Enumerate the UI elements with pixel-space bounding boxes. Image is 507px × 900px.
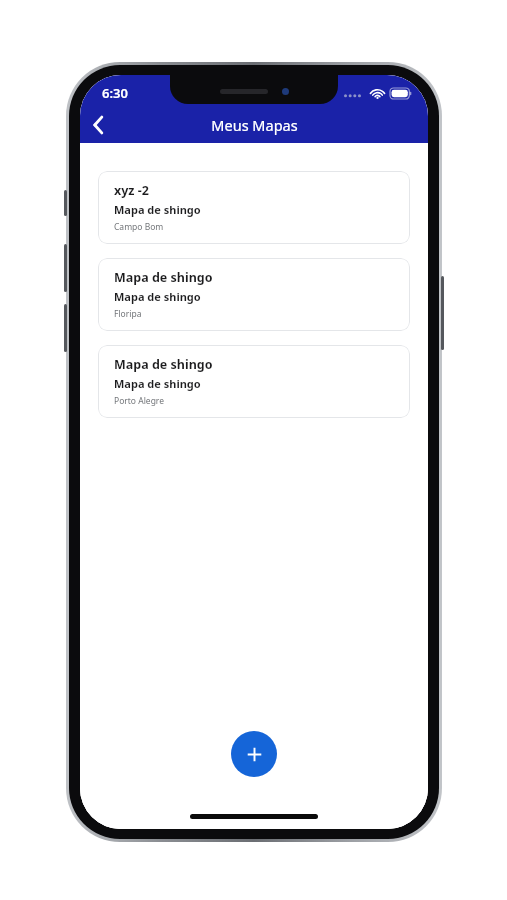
staticText: 6:30 (102, 84, 128, 102)
staticText: Porto Alegre (114, 395, 164, 407)
button[interactable]: Mapa de shingo (98, 258, 410, 331)
staticText: Mapa de shingo (114, 356, 213, 373)
button[interactable]: Mapa de shingo (98, 345, 410, 418)
staticText: Mapa de shingo (114, 376, 201, 391)
staticText: Campo Bom (114, 221, 164, 233)
staticText: Floripa (114, 308, 142, 320)
button[interactable]: Add map (231, 731, 277, 777)
staticText: Mapa de shingo (114, 202, 201, 217)
staticText: Meus Mapas (211, 115, 298, 135)
button[interactable]: xyz -2 (98, 171, 410, 244)
staticText: Mapa de shingo (114, 289, 201, 304)
staticText: xyz -2 (114, 182, 149, 199)
button[interactable]: Back (80, 107, 116, 143)
staticText: Mapa de shingo (114, 269, 213, 286)
